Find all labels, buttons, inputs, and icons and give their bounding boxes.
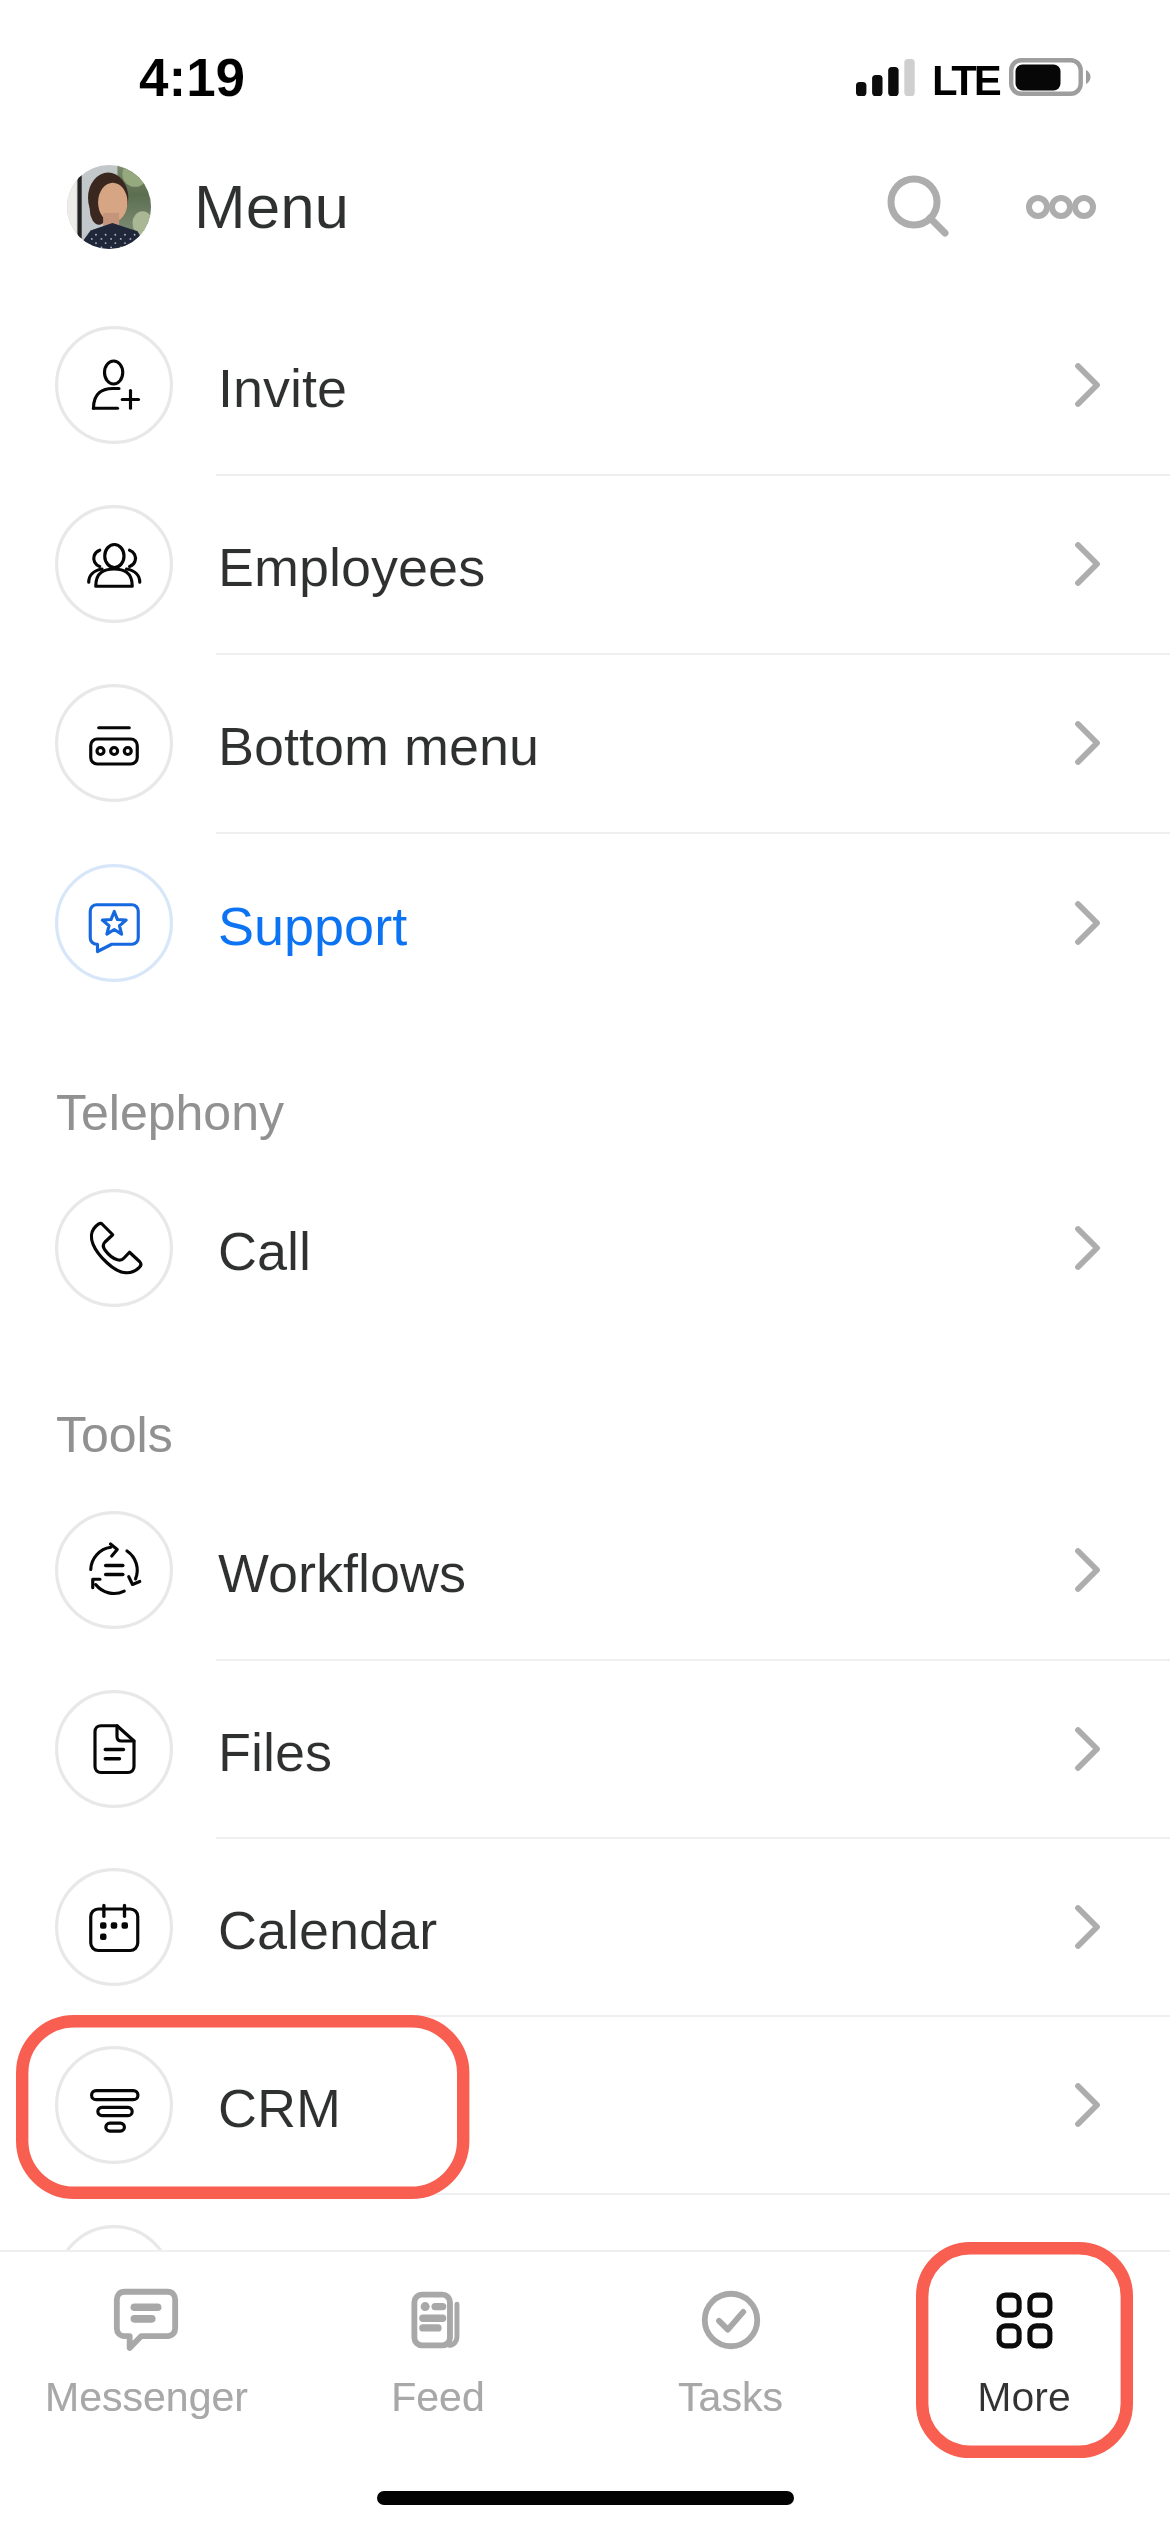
staticText: Call (218, 1221, 312, 1281)
button[interactable]: Workflows (0, 1480, 1170, 1659)
staticText: Workflows (218, 1543, 467, 1603)
button[interactable]: Search (866, 159, 962, 255)
button[interactable]: Messenger (0, 2252, 292, 2420)
staticText: Bottom menu (218, 716, 540, 776)
staticText: 4:19 (139, 48, 246, 107)
button[interactable]: Support (0, 833, 1170, 1012)
button[interactable]: Call (0, 1158, 1170, 1337)
button[interactable]: Feed (292, 2252, 584, 2420)
staticText: Calendar (218, 1900, 438, 1960)
button[interactable]: Tasks (0, 2194, 1170, 2373)
button[interactable]: More (877, 2252, 1170, 2420)
button[interactable]: Files (0, 1659, 1170, 1838)
staticText: Support (218, 896, 408, 956)
staticText: Files (218, 1722, 333, 1782)
staticText: Messenger (45, 2374, 248, 2420)
staticText: LTE (932, 57, 999, 104)
staticText: Menu (194, 172, 350, 241)
staticText: Telephony (56, 1085, 284, 1141)
staticText: CRM (218, 2078, 341, 2138)
button[interactable]: Invite (0, 295, 1170, 474)
button[interactable]: Tasks (584, 2252, 877, 2420)
staticText: Tools (56, 1407, 173, 1463)
button[interactable]: More options (1012, 159, 1108, 255)
button[interactable]: Bottom menu (0, 653, 1170, 832)
staticText: Feed (391, 2374, 485, 2420)
staticText: Invite (218, 358, 348, 418)
staticText: More (977, 2374, 1071, 2420)
button[interactable]: CRM (0, 2015, 1170, 2194)
button[interactable]: Calendar (0, 1837, 1170, 2016)
button[interactable]: Employees (0, 474, 1170, 653)
staticText: Employees (218, 537, 486, 597)
button[interactable]: Profile (67, 165, 151, 249)
staticText: Tasks (678, 2374, 783, 2420)
